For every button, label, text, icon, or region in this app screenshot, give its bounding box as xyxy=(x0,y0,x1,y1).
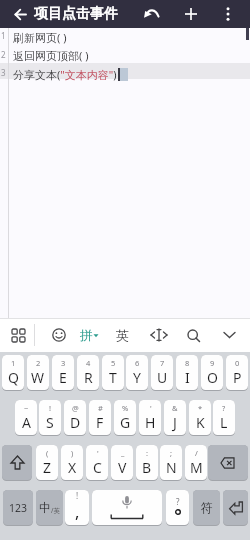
staticText: I xyxy=(185,368,190,387)
button[interactable]: 符 xyxy=(193,490,220,525)
button[interactable]: 中 xyxy=(36,490,63,525)
staticText: : xyxy=(146,448,149,458)
staticText: 刷新网页( ) xyxy=(13,30,67,45)
button[interactable]: 6 xyxy=(126,355,148,390)
staticText: C xyxy=(93,458,102,477)
button[interactable]: ( xyxy=(36,445,58,480)
button[interactable]: 5 xyxy=(102,355,124,390)
staticText: ~ xyxy=(24,403,29,413)
staticText: 拼 xyxy=(80,327,93,343)
staticText: / xyxy=(195,448,198,458)
staticText: ? xyxy=(222,403,226,413)
staticText: # xyxy=(98,403,103,413)
button[interactable] xyxy=(182,324,204,346)
staticText: ! xyxy=(49,403,52,413)
staticText: @ xyxy=(72,403,79,413)
staticText: ' xyxy=(150,403,152,413)
button[interactable]: ) xyxy=(61,445,83,480)
staticText: Q xyxy=(8,368,19,387)
staticText: % xyxy=(122,403,129,413)
button[interactable]: 4 xyxy=(77,355,99,390)
button[interactable]: ! xyxy=(39,400,61,435)
button[interactable] xyxy=(2,445,32,480)
button[interactable] xyxy=(92,490,162,525)
staticText: ' xyxy=(97,448,99,458)
staticText: 2 xyxy=(36,358,41,368)
staticText: 4 xyxy=(86,358,91,368)
staticText: , xyxy=(75,501,80,523)
staticText: 8 xyxy=(185,358,190,368)
staticText: ? xyxy=(176,496,180,507)
staticText: 1 xyxy=(1,30,6,41)
button[interactable]: # xyxy=(89,400,111,435)
staticText: /英 xyxy=(51,506,60,515)
button[interactable] xyxy=(49,325,69,345)
staticText: R xyxy=(84,368,93,387)
button[interactable]: 7 xyxy=(151,355,173,390)
staticText: K xyxy=(196,413,205,432)
button[interactable]: @ xyxy=(64,400,86,435)
staticText: ) xyxy=(71,448,74,458)
button[interactable] xyxy=(6,0,34,28)
button[interactable] xyxy=(208,445,248,480)
staticText: V xyxy=(118,458,127,477)
staticText: & xyxy=(172,403,178,413)
button[interactable]: 123 xyxy=(3,490,33,525)
staticText: 123 xyxy=(9,501,28,515)
staticText: 中 xyxy=(39,500,51,515)
button[interactable] xyxy=(223,490,248,525)
staticText: N xyxy=(166,458,177,477)
button[interactable] xyxy=(138,0,166,28)
staticText: Y xyxy=(133,368,141,387)
button[interactable]: ' xyxy=(86,445,108,480)
button[interactable]: ? xyxy=(166,490,189,525)
button[interactable]: 8 xyxy=(176,355,198,390)
staticText: 9 xyxy=(210,358,215,368)
button[interactable]: 拼 xyxy=(80,327,99,343)
button[interactable] xyxy=(218,324,240,346)
button[interactable] xyxy=(8,325,28,345)
staticText: X xyxy=(68,458,77,477)
staticText: W xyxy=(31,368,45,387)
staticText: H xyxy=(145,413,156,432)
button[interactable]: : xyxy=(136,445,158,480)
button[interactable]: 9 xyxy=(201,355,223,390)
staticText: U xyxy=(157,368,168,387)
staticText: D xyxy=(70,413,81,432)
button[interactable]: 0 xyxy=(226,355,248,390)
button[interactable]: * xyxy=(189,400,211,435)
button[interactable]: % xyxy=(114,400,136,435)
button[interactable]: ~ xyxy=(15,400,37,435)
button[interactable] xyxy=(214,0,242,28)
button[interactable]: ; xyxy=(160,445,182,480)
staticText: J xyxy=(173,413,177,432)
staticText: S xyxy=(46,413,54,432)
staticText: 返回网页顶部( ) xyxy=(13,48,89,63)
staticText: 1 xyxy=(11,358,16,368)
staticText: B xyxy=(142,458,152,477)
staticText: 7 xyxy=(160,358,165,368)
button[interactable] xyxy=(148,324,170,346)
button[interactable] xyxy=(177,0,205,28)
button[interactable]: ' xyxy=(139,400,161,435)
button[interactable]: ? xyxy=(213,400,235,435)
staticText: ( xyxy=(46,448,49,458)
button[interactable]: ! xyxy=(65,490,89,525)
button[interactable]: / xyxy=(185,445,207,480)
staticText: F xyxy=(96,413,104,432)
button[interactable]: _ xyxy=(111,445,133,480)
staticText: L xyxy=(220,413,228,432)
staticText: ; xyxy=(170,448,173,458)
staticText: 2 xyxy=(1,49,6,60)
staticText: 3 xyxy=(61,358,66,368)
button[interactable]: & xyxy=(164,400,186,435)
button[interactable]: 1 xyxy=(2,355,24,390)
button[interactable]: 英 xyxy=(116,327,129,343)
staticText: 项目点击事件 xyxy=(34,5,118,23)
staticText: 符 xyxy=(201,500,213,515)
button[interactable]: 2 xyxy=(27,355,49,390)
staticText: * xyxy=(198,403,203,413)
button[interactable]: 3 xyxy=(52,355,74,390)
staticText: E xyxy=(59,368,67,387)
staticText: 0 xyxy=(235,358,240,368)
